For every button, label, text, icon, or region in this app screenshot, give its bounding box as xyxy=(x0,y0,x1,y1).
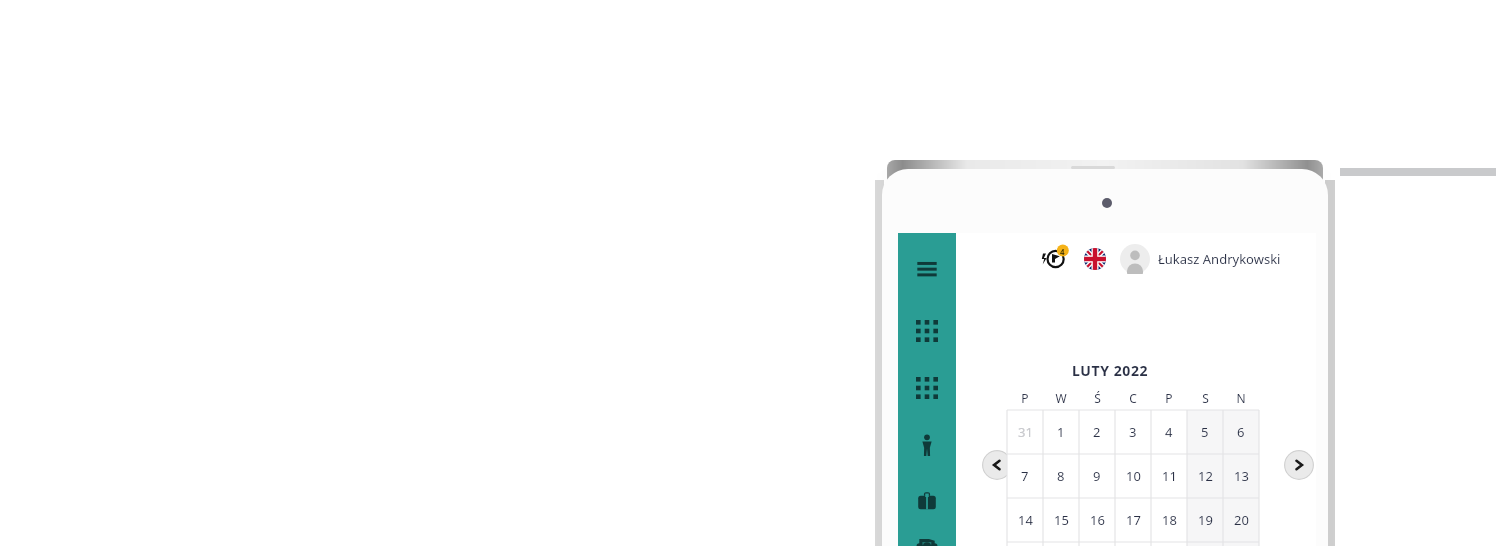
staticText: S xyxy=(1202,390,1209,406)
button[interactable]: 18 xyxy=(1151,498,1187,542)
button[interactable]: 26 xyxy=(1187,542,1223,546)
button[interactable]: 10 xyxy=(1115,454,1151,498)
button[interactable]: 6 xyxy=(1223,410,1259,454)
staticText: P xyxy=(1021,390,1029,406)
staticText: 13 xyxy=(1234,467,1249,485)
button[interactable]: 23 xyxy=(1079,542,1115,546)
staticText: Ś xyxy=(1094,390,1101,406)
button[interactable]: 9 xyxy=(1079,454,1115,498)
staticText: LUTY 2022 xyxy=(1072,361,1149,380)
button[interactable]: 2 xyxy=(1079,410,1115,454)
button[interactable]: 1 xyxy=(1043,410,1079,454)
staticText: N xyxy=(1236,390,1246,406)
staticText: W xyxy=(1055,390,1067,406)
staticText: 2 xyxy=(1093,423,1101,441)
button[interactable]: 24 xyxy=(1115,542,1151,546)
staticText: 16 xyxy=(1090,511,1105,529)
button[interactable]: Previous month xyxy=(982,450,1012,480)
button[interactable]: 13 xyxy=(1223,454,1259,498)
staticText: 4 xyxy=(1165,423,1173,441)
staticText: 9 xyxy=(1093,467,1101,485)
button[interactable]: Menu xyxy=(909,251,945,287)
button[interactable]: Modules xyxy=(909,370,945,406)
staticText: 4 xyxy=(1060,246,1065,257)
button[interactable]: 19 xyxy=(1187,498,1223,542)
staticText: 19 xyxy=(1198,511,1213,529)
button[interactable]: 14 xyxy=(1007,498,1043,542)
staticText: 12 xyxy=(1198,467,1213,485)
button[interactable]: 11 xyxy=(1151,454,1187,498)
button[interactable]: 17 xyxy=(1115,498,1151,542)
button[interactable]: 31 xyxy=(1007,410,1043,454)
button[interactable]: 5 xyxy=(1187,410,1223,454)
button[interactable]: 3 xyxy=(1115,410,1151,454)
button[interactable]: Dashboard xyxy=(909,313,945,349)
staticText: 31 xyxy=(1018,423,1033,441)
button[interactable]: Łukasz Andrykowski xyxy=(1120,244,1281,274)
staticText: Łukasz Andrykowski xyxy=(1158,250,1281,268)
staticText: 8 xyxy=(1057,467,1065,485)
button[interactable]: 25 xyxy=(1151,542,1187,546)
button[interactable]: 20 xyxy=(1223,498,1259,542)
button[interactable]: 22 xyxy=(1043,542,1079,546)
button[interactable]: Language xyxy=(1084,248,1106,270)
staticText: 7 xyxy=(1021,467,1029,485)
button[interactable]: 8 xyxy=(1043,454,1079,498)
staticText: P xyxy=(1165,390,1173,406)
button[interactable]: 12 xyxy=(1187,454,1223,498)
button[interactable]: 4 xyxy=(1151,410,1187,454)
button[interactable]: 15 xyxy=(1043,498,1079,542)
button[interactable]: Business trips xyxy=(909,483,945,519)
staticText: 14 xyxy=(1018,511,1033,529)
staticText: 18 xyxy=(1162,511,1177,529)
staticText: 11 xyxy=(1162,467,1177,485)
staticText: 3 xyxy=(1129,423,1137,441)
button[interactable]: Documents xyxy=(909,539,945,546)
staticText: C xyxy=(1129,390,1137,406)
button[interactable]: Next month xyxy=(1284,450,1314,480)
staticText: 10 xyxy=(1126,467,1141,485)
button[interactable]: 27 xyxy=(1223,542,1259,546)
staticText: 17 xyxy=(1126,511,1141,529)
button[interactable]: 21 xyxy=(1007,542,1043,546)
staticText: 15 xyxy=(1054,511,1069,529)
button[interactable]: 16 xyxy=(1079,498,1115,542)
staticText: 5 xyxy=(1201,423,1209,441)
button[interactable]: Notifications xyxy=(1038,242,1072,276)
button[interactable]: Employees xyxy=(909,427,945,463)
staticText: 6 xyxy=(1237,423,1245,441)
button[interactable]: 7 xyxy=(1007,454,1043,498)
staticText: 1 xyxy=(1057,423,1065,441)
staticText: 20 xyxy=(1234,511,1249,529)
